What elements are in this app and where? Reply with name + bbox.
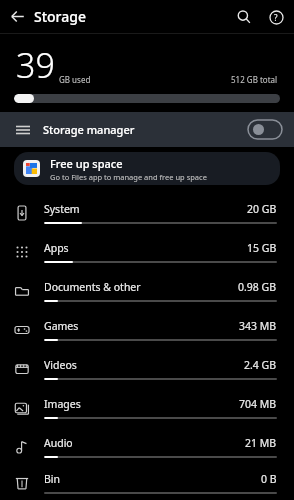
staticText: 15 GB (247, 241, 277, 255)
button[interactable]: Storage manager (0, 112, 294, 147)
button[interactable]: Apps (0, 232, 294, 271)
staticText: 0 B (261, 472, 277, 486)
staticText: Audio (44, 436, 73, 450)
staticText: 343 MB (239, 319, 277, 333)
button[interactable]: Documents & other (0, 271, 294, 310)
staticText: 21 MB (245, 436, 277, 450)
staticText: Free up space (50, 156, 123, 171)
button[interactable]: Audio (0, 427, 294, 466)
button[interactable]: Back (0, 0, 34, 33)
staticText: 39 (16, 42, 55, 88)
staticText: Images (44, 397, 81, 411)
button[interactable]: Videos (0, 349, 294, 388)
staticText: 0.98 GB (238, 280, 277, 294)
staticText: GB used (59, 74, 91, 85)
staticText: Bin (44, 472, 61, 486)
button[interactable]: Free up space (14, 152, 280, 185)
staticText: Documents & other (44, 280, 141, 294)
staticText: System (44, 202, 80, 216)
staticText: 704 MB (239, 397, 277, 411)
staticText: Videos (44, 358, 77, 372)
staticText: Go to Files app to manage and free up sp… (50, 172, 207, 182)
staticText: Games (44, 319, 79, 333)
button[interactable]: Storage manager toggle (248, 120, 282, 139)
button[interactable]: Search (228, 1, 260, 33)
staticText: 2.4 GB (244, 358, 277, 372)
staticText: Storage (34, 7, 86, 26)
staticText: Apps (44, 241, 69, 255)
button[interactable]: Bin (0, 466, 294, 500)
button[interactable]: Games (0, 310, 294, 349)
staticText: 20 GB (247, 202, 277, 216)
staticText: Storage manager (43, 122, 135, 137)
button[interactable]: Images (0, 388, 294, 427)
button[interactable]: Help (260, 1, 292, 33)
staticText: ? (274, 12, 278, 23)
staticText: 512 GB total (231, 74, 278, 85)
button[interactable]: System (0, 193, 294, 232)
